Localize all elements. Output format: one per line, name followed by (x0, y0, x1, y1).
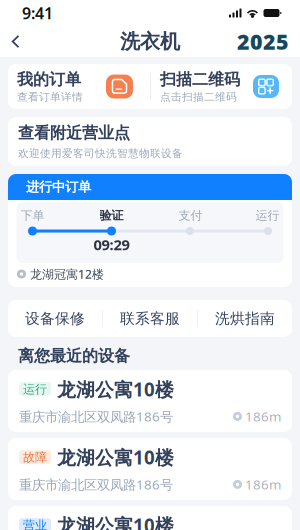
staticText: 查看订单详情 (17, 90, 83, 103)
staticText: 营业 (23, 518, 47, 530)
staticText: 重庆市渝北区双凤路186号 (19, 475, 173, 493)
staticText: 2025 (237, 27, 289, 56)
staticText: 联系客服 (120, 309, 180, 327)
staticText: 我的订单 (17, 70, 81, 89)
staticText: 支付 (178, 208, 202, 223)
staticText: 查看附近营业点 (18, 123, 130, 143)
button[interactable]: 2025 (237, 31, 300, 51)
staticText: 扫描二维码 (160, 70, 240, 89)
button[interactable]: 查看附近营业点 (8, 117, 292, 166)
button[interactable]: 返回 (0, 26, 32, 57)
button[interactable]: 设备保修 (8, 300, 102, 337)
staticText: 龙湖公寓10楼 (57, 377, 174, 402)
button[interactable]: 故障 (8, 438, 292, 500)
staticText: 龙湖公寓10楼 (57, 445, 174, 470)
staticText: 洗烘指南 (215, 309, 275, 327)
button[interactable]: 运行 (8, 370, 292, 432)
staticText: 下单 (20, 208, 44, 223)
staticText: 运行 (23, 382, 47, 396)
staticText: 重庆市渝北区双凤路186号 (19, 407, 173, 425)
staticText: 故障 (23, 450, 47, 464)
staticText: 离您最近的设备 (18, 346, 130, 366)
staticText: 龙湖冠寓12楼 (30, 266, 104, 282)
button[interactable]: 营业 (8, 506, 292, 530)
staticText: 欢迎使用爱客司快洗智慧物联设备 (18, 147, 183, 160)
staticText: 186m (245, 475, 281, 493)
staticText: 点击扫描二维码 (160, 90, 237, 103)
staticText: 洗衣机 (120, 29, 180, 54)
staticText: 验证 (99, 208, 123, 223)
staticText: 186m (245, 407, 281, 425)
staticText: 进行中订单 (26, 179, 91, 195)
staticText: 9:41 (22, 2, 53, 24)
button[interactable]: 扫描二维码 (151, 64, 292, 109)
button[interactable]: 我的订单 (8, 64, 150, 109)
staticText: 运行 (255, 208, 279, 223)
button[interactable]: 联系客服 (103, 300, 197, 337)
staticText: 龙湖公寓10楼 (57, 513, 174, 530)
staticText: 设备保修 (25, 309, 85, 327)
staticText: 09:29 (93, 235, 129, 254)
button[interactable]: 洗烘指南 (198, 300, 292, 337)
